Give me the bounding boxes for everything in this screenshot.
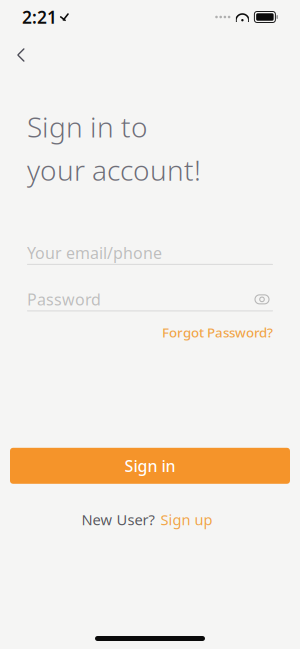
- button[interactable]: Sign in: [10, 448, 290, 484]
- staticText: Your email/phone: [27, 242, 162, 263]
- staticText: New User?: [81, 510, 154, 529]
- staticText: Sign in: [124, 455, 175, 476]
- staticText: 2:21: [22, 5, 57, 28]
- button[interactable]: Forgot Password?: [154, 319, 273, 345]
- staticText: Password: [27, 289, 101, 310]
- button[interactable]: Back: [4, 38, 38, 72]
- staticText: Forgot Password?: [162, 323, 273, 341]
- button[interactable]: Sign up: [154, 506, 218, 533]
- button[interactable]: Show password: [251, 289, 273, 309]
- staticText: Sign in to: [27, 108, 148, 145]
- staticText: your account!: [27, 151, 201, 188]
- staticText: Sign up: [160, 510, 212, 529]
